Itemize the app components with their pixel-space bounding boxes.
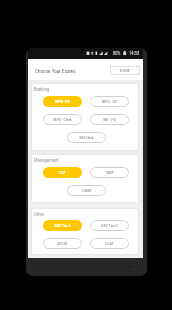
staticText: CAT bbox=[59, 170, 66, 175]
button[interactable]: SSC Tier-2 bbox=[90, 220, 129, 231]
staticText: 80% bbox=[113, 51, 121, 56]
staticText: SBI Clerk bbox=[79, 135, 94, 140]
button[interactable]: AFCAT bbox=[43, 238, 82, 249]
staticText: Other bbox=[34, 212, 45, 218]
staticText: CLAT bbox=[105, 241, 114, 246]
staticText: Management bbox=[34, 158, 59, 164]
button[interactable]: CAT bbox=[43, 167, 82, 178]
button[interactable]: DONE bbox=[110, 66, 140, 75]
staticText: SSC Tier-1 bbox=[54, 223, 71, 228]
button[interactable]: CMAT bbox=[67, 185, 106, 196]
staticText: SBI - PO bbox=[103, 117, 116, 122]
button[interactable]: IBPS - SO bbox=[90, 96, 129, 107]
button[interactable]: IBPS - PO bbox=[43, 96, 82, 107]
staticText: MAT bbox=[106, 170, 114, 175]
staticText: DONE bbox=[120, 68, 131, 73]
staticText: Banking bbox=[34, 87, 50, 93]
button[interactable]: IBPS - Clerk bbox=[43, 114, 82, 125]
button[interactable]: SSC Tier-1 bbox=[43, 220, 82, 231]
button[interactable]: MAT bbox=[90, 167, 129, 178]
staticText: IBPS - SO bbox=[102, 99, 117, 104]
staticText: Choose Your Exams bbox=[35, 68, 76, 74]
button[interactable]: CLAT bbox=[90, 238, 129, 249]
staticText: 14:33 bbox=[129, 51, 140, 56]
button[interactable]: SBI - PO bbox=[90, 114, 129, 125]
staticText: CMAT bbox=[82, 188, 92, 193]
staticText: IBPS - Clerk bbox=[53, 117, 72, 122]
staticText: SSC Tier-2 bbox=[101, 223, 118, 228]
staticText: IBPS - PO bbox=[55, 99, 70, 104]
button[interactable]: SBI Clerk bbox=[67, 132, 106, 143]
staticText: AFCAT bbox=[57, 241, 68, 246]
